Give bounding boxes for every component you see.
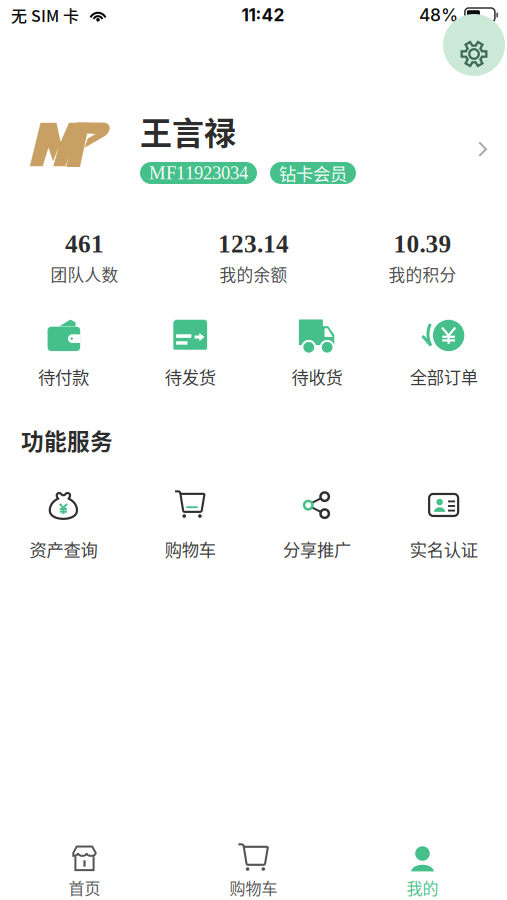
staticText: 我的积分 [388,262,456,286]
staticText: 购物车 [165,536,216,562]
staticText: 购物车 [229,876,277,899]
button[interactable]: 购物车 [169,845,338,899]
staticText: 实名认证 [410,536,478,562]
button[interactable]: 待付款 [0,319,127,389]
staticText: 待收货 [291,364,342,389]
button[interactable]: 设置 [443,23,505,85]
button[interactable]: 王言禄 [0,122,507,214]
staticText: 无 SIM 卡 [11,3,79,27]
staticText: MF11923034 [149,163,248,183]
staticText: 首页 [68,876,100,899]
staticText: 461 [65,230,104,258]
staticText: 分享推广 [283,536,351,562]
staticText: 48% [419,4,458,25]
staticText: 待发货 [165,364,216,389]
staticText: 我的余额 [219,262,287,286]
button[interactable]: 待发货 [127,319,254,389]
staticText: 我的 [406,876,438,899]
staticText: 钻卡会员 [279,160,347,186]
button[interactable]: 分享推广 [253,490,380,562]
staticText: 资产查询 [29,536,97,562]
staticText: 全部订单 [410,364,478,389]
button[interactable]: 实名认证 [380,490,507,562]
staticText: 王言禄 [140,108,236,154]
staticText: 10.39 [393,230,451,258]
button[interactable]: 待收货 [253,319,380,389]
button[interactable]: 首页 [0,845,169,899]
staticText: 团队人数 [50,262,118,286]
button[interactable]: 资产查询 [0,490,127,562]
button[interactable]: 购物车 [127,490,254,562]
staticText: 123.14 [218,230,289,258]
button[interactable]: 我的 [338,845,507,899]
staticText: 待付款 [38,364,89,389]
button[interactable]: 全部订单 [380,319,507,389]
staticText: 11:42 [241,4,284,25]
staticText: 功能服务 [21,424,113,456]
